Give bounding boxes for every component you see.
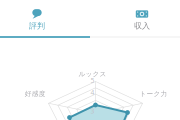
staticText: トーク力	[139, 90, 167, 98]
staticText: 4	[91, 88, 95, 97]
staticText: 収入	[134, 21, 150, 31]
button[interactable]: 収入	[90, 0, 180, 36]
button[interactable]: 評判	[0, 0, 90, 36]
staticText: 5	[91, 76, 95, 85]
staticText: 評判	[29, 21, 45, 31]
staticText: 好感度	[25, 90, 46, 98]
staticText: ルックス	[79, 70, 107, 78]
staticText: 3	[91, 107, 95, 115]
